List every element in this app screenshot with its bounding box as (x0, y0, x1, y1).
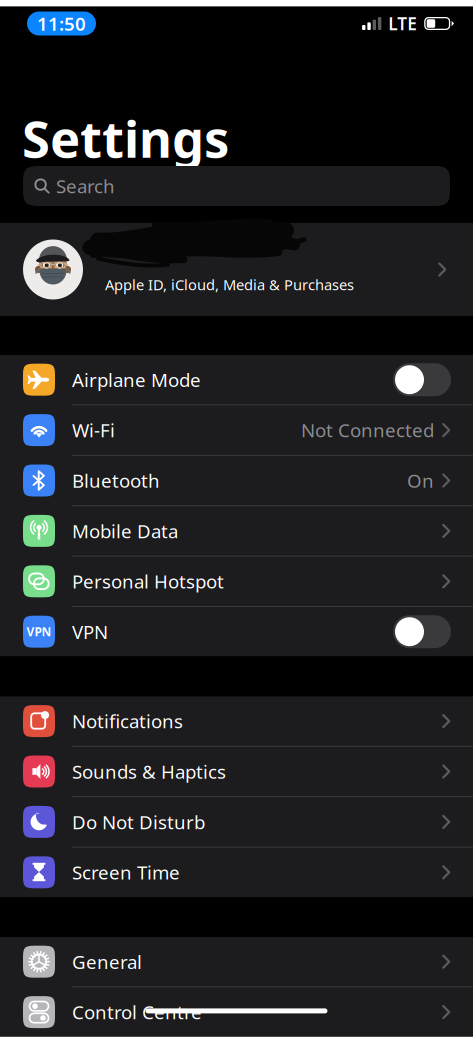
button[interactable]: Bluetooth (0, 456, 473, 506)
button[interactable]: Search (0, 162, 473, 223)
button[interactable]: Apple ID, iCloud, Media & Purchases (0, 223, 473, 316)
staticText: Search (56, 174, 115, 198)
staticText: Sounds & Haptics (72, 759, 226, 784)
button[interactable]: Sounds & Haptics (0, 747, 473, 797)
button[interactable]: Screen Time (0, 848, 473, 897)
staticText: General (72, 949, 142, 974)
button[interactable]: Mobile Data (0, 506, 473, 557)
staticText: Wi-Fi (72, 418, 115, 442)
staticText: Personal Hotspot (72, 569, 224, 594)
staticText: 11:50 (37, 11, 86, 36)
staticText: Notifications (72, 709, 183, 733)
staticText: Airplane Mode (72, 367, 201, 392)
button[interactable]: Control Centre (0, 987, 473, 1037)
button[interactable]: Personal Hotspot (0, 557, 473, 607)
staticText: Do Not Disturb (72, 809, 205, 834)
staticText: Not Connected (301, 418, 434, 442)
staticText: Control Centre (72, 1000, 202, 1024)
button[interactable]: Notifications (0, 696, 473, 747)
staticText: On (407, 468, 434, 493)
button[interactable]: Wi-Fi (0, 405, 473, 456)
button[interactable]: VPN (0, 607, 473, 656)
staticText: LTE (388, 12, 417, 35)
staticText: VPN (72, 619, 108, 644)
button[interactable]: Do Not Disturb (0, 797, 473, 848)
staticText: Screen Time (72, 860, 180, 885)
staticText: Apple ID, iCloud, Media & Purchases (105, 275, 354, 294)
button[interactable]: General (0, 937, 473, 987)
staticText: Settings (22, 104, 229, 172)
staticText: Mobile Data (72, 518, 178, 543)
button[interactable]: Airplane Mode (0, 355, 473, 405)
staticText: VPN (26, 624, 51, 640)
staticText: Bluetooth (72, 468, 160, 493)
